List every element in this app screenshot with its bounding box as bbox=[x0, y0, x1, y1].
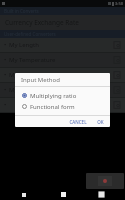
button[interactable]: • bbox=[0, 68, 125, 82]
staticText: CANCEL bbox=[69, 119, 87, 125]
staticText: • bbox=[4, 101, 7, 109]
staticText: Currency Exchange Rate bbox=[5, 18, 79, 27]
staticText: Input Method bbox=[21, 76, 60, 84]
staticText bbox=[9, 101, 113, 109]
staticText: User-defined Converters bbox=[4, 31, 56, 37]
button[interactable]: Recents bbox=[86, 189, 116, 200]
button[interactable]: Home bbox=[48, 189, 78, 200]
button[interactable]: • bbox=[0, 83, 125, 97]
staticText: • bbox=[4, 41, 7, 49]
staticText: Functional form bbox=[30, 103, 75, 111]
button[interactable]: Recent app preview bbox=[86, 173, 124, 189]
button[interactable]: OK bbox=[95, 118, 106, 126]
staticText: OK bbox=[97, 119, 104, 125]
button[interactable]: CANCEL bbox=[67, 118, 89, 126]
staticText: 3:58 bbox=[115, 1, 123, 6]
staticText: My Temp bbox=[9, 86, 113, 94]
button[interactable]: Functional form bbox=[15, 101, 110, 112]
staticText: • bbox=[4, 71, 7, 79]
button[interactable]: Back bbox=[9, 189, 39, 200]
staticText: Multiplying ratio bbox=[30, 92, 77, 100]
staticText: Built in Converts bbox=[4, 8, 39, 14]
staticText: My Functional form bbox=[9, 71, 113, 79]
button[interactable]: Multiplying ratio bbox=[15, 90, 110, 101]
button[interactable]: • bbox=[0, 98, 125, 112]
